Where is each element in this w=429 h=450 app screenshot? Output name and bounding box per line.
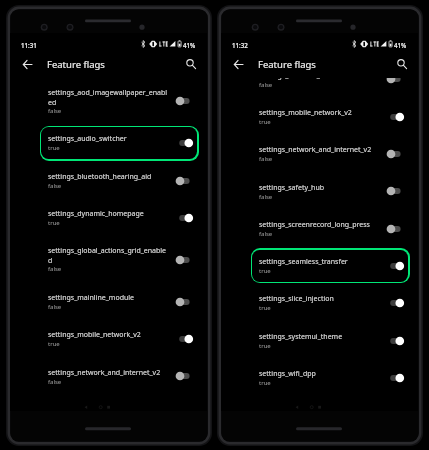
button[interactable]: [10, 162, 207, 199]
staticText: true: [259, 304, 271, 312]
staticText: settings_screenrecord_long_press: [259, 220, 370, 230]
staticText: false: [259, 193, 273, 201]
staticText: true: [48, 144, 60, 152]
staticText: settings_mainline_module: [48, 293, 135, 303]
button[interactable]: [10, 78, 207, 125]
staticText: settings_bluetooth_hearing_aid: [48, 172, 152, 182]
staticText: false: [259, 155, 273, 163]
staticText: settings_network_and_internet_v2: [259, 145, 372, 155]
staticText: settings_mobile_network_v2: [259, 108, 352, 118]
staticText: settings_seamless_transfer: [259, 257, 348, 267]
staticText: true: [259, 267, 271, 275]
button[interactable]: [221, 285, 418, 322]
staticText: 11:31: [21, 41, 37, 49]
staticText: false: [259, 230, 273, 238]
staticText: settings_systemui_theme: [259, 332, 343, 342]
staticText: settings_global_actions_grid_enabled: [48, 246, 170, 265]
staticText: false: [48, 265, 62, 273]
staticText: settings_aod_imagewallpaper_enabled: [48, 88, 170, 107]
staticText: false: [48, 303, 62, 311]
staticText: 11:32: [232, 41, 248, 49]
button[interactable]: Navigate up: [18, 55, 36, 73]
staticText: settings_safety_hub: [259, 183, 325, 193]
staticText: false: [48, 378, 62, 386]
staticText: settings_wifi_dpp: [259, 369, 316, 379]
staticText: true: [48, 219, 60, 227]
button[interactable]: [221, 322, 418, 359]
button[interactable]: [221, 98, 418, 135]
staticText: false: [48, 107, 62, 115]
button[interactable]: [221, 247, 418, 284]
staticText: true: [259, 379, 271, 387]
staticText: Feature flags: [258, 58, 316, 71]
button[interactable]: Search: [182, 55, 200, 73]
staticText: settings_mainline_module: [259, 78, 346, 81]
staticText: Feature flags: [47, 58, 105, 71]
button[interactable]: [10, 125, 207, 162]
button[interactable]: [10, 283, 207, 320]
button[interactable]: [10, 237, 207, 284]
button[interactable]: Navigate up: [229, 55, 247, 73]
staticText: 41%: [183, 41, 196, 49]
staticText: settings_audio_switcher: [48, 134, 127, 144]
button[interactable]: [10, 320, 207, 357]
staticText: 41%: [394, 41, 407, 49]
button[interactable]: [221, 359, 418, 396]
staticText: false: [48, 182, 62, 190]
button[interactable]: [221, 173, 418, 210]
button[interactable]: [10, 358, 207, 395]
staticText: settings_mobile_network_v2: [48, 330, 141, 340]
staticText: false: [259, 81, 273, 89]
button[interactable]: [10, 199, 207, 236]
button[interactable]: [221, 78, 418, 98]
staticText: settings_network_and_internet_v2: [48, 368, 161, 378]
button[interactable]: [221, 135, 418, 172]
staticText: settings_dynamic_homepage: [48, 209, 144, 219]
staticText: true: [259, 118, 271, 126]
staticText: true: [259, 342, 271, 350]
staticText: settings_slice_injection: [259, 294, 334, 304]
button[interactable]: Search: [393, 55, 411, 73]
button[interactable]: [221, 210, 418, 247]
staticText: true: [48, 340, 60, 348]
